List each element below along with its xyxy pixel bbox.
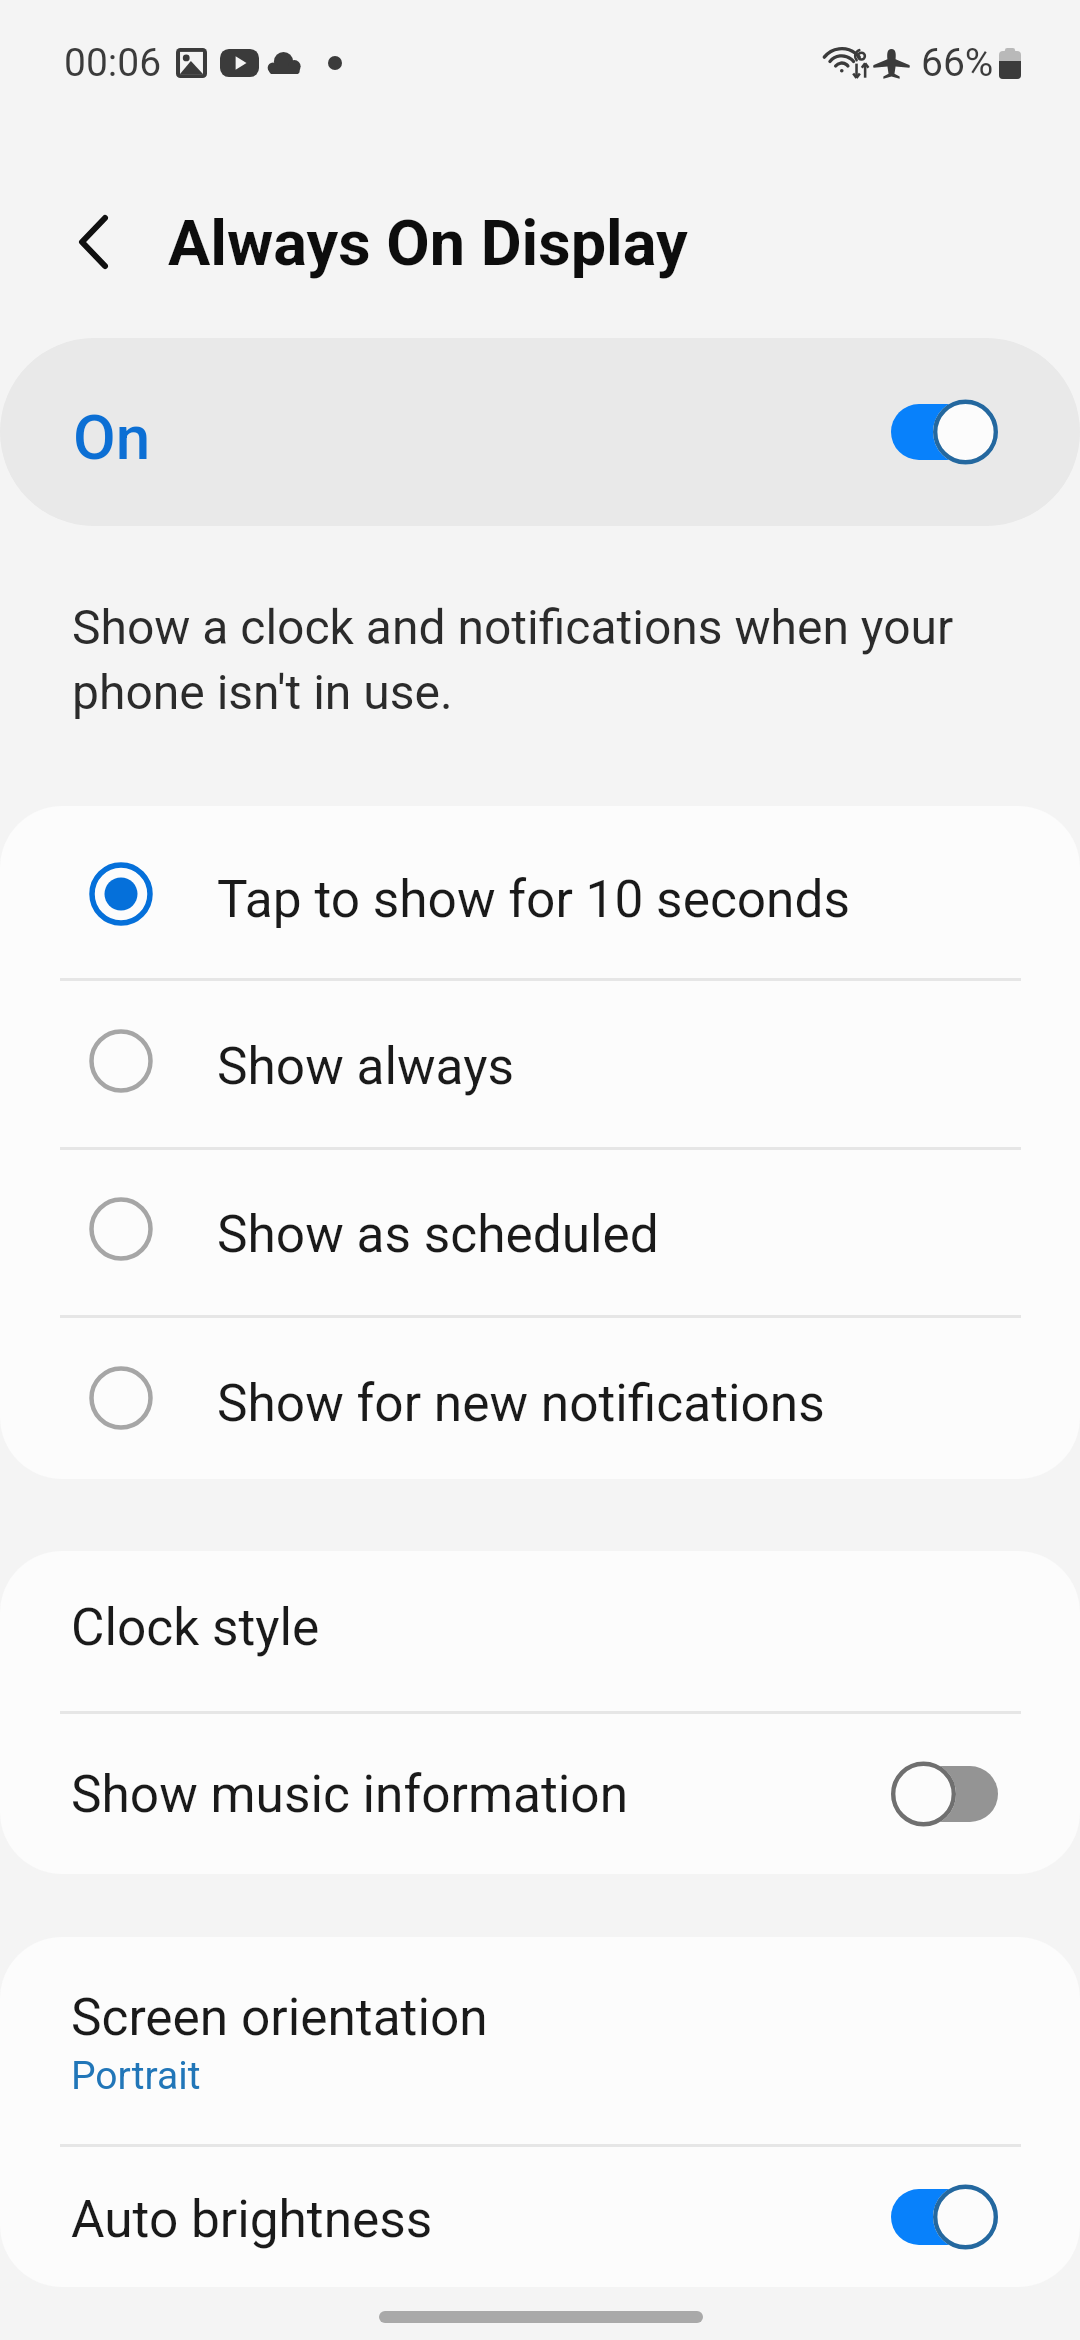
staticText: 66% (921, 40, 994, 86)
staticText: Screen orientation (71, 1987, 488, 2047)
button[interactable]: Clock style (0, 1551, 1080, 1711)
staticText: Show music information (71, 1764, 629, 1824)
button[interactable]: Show as scheduled (0, 1150, 1080, 1315)
button[interactable]: Tap to show for 10 seconds (0, 806, 1080, 978)
staticText: Clock style (71, 1597, 320, 1657)
staticText: Tap to show for 10 seconds (217, 869, 850, 929)
staticText: Auto brightness (71, 2189, 433, 2249)
button[interactable]: Screen orientation (0, 1937, 1080, 2144)
staticText: 00:06 (64, 40, 162, 86)
staticText: Show a clock and notifications when your… (72, 599, 954, 721)
staticText: Portrait (71, 2053, 201, 2099)
button[interactable]: Navigate up (49, 198, 137, 286)
button[interactable]: On (0, 338, 1080, 526)
button[interactable]: Show for new notifications (0, 1318, 1080, 1479)
staticText: On (73, 401, 151, 474)
button[interactable]: Auto brightness (0, 2147, 1080, 2287)
staticText: Show always (217, 1036, 514, 1096)
staticText: Show for new notifications (217, 1373, 825, 1433)
button[interactable]: Show always (0, 981, 1080, 1147)
staticText: Show as scheduled (217, 1204, 659, 1264)
staticText: Always On Display (168, 207, 688, 281)
button[interactable]: Show music information (0, 1714, 1080, 1874)
